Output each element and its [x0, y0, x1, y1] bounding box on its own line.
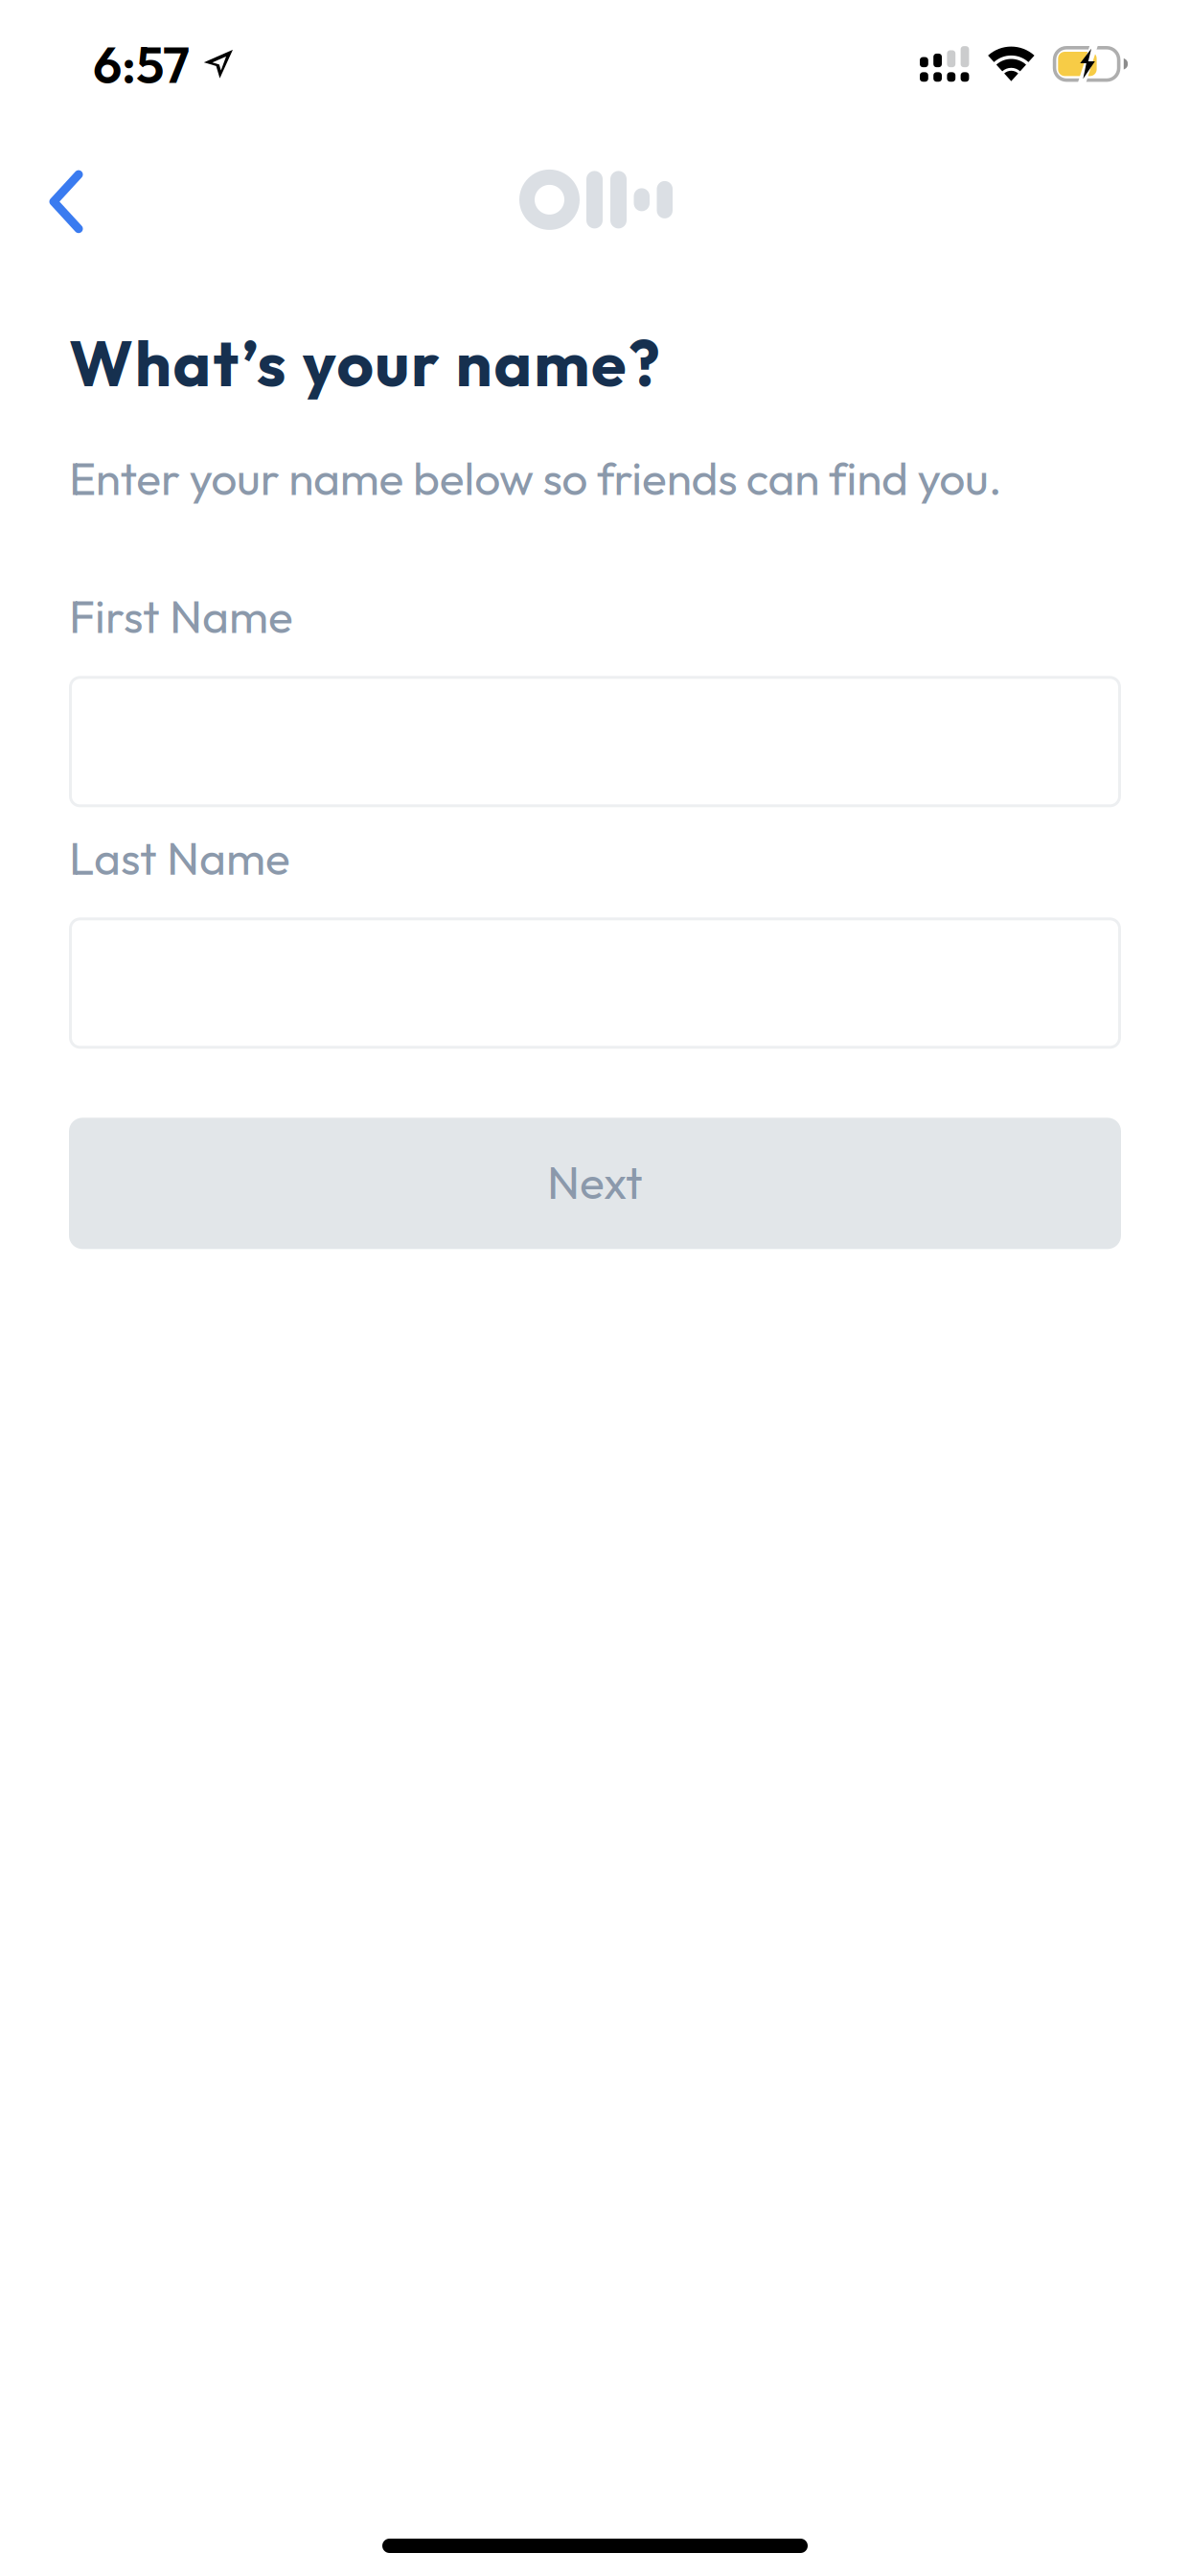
staticText: Next: [547, 1153, 643, 1211]
button[interactable]: Last Name: [69, 917, 1121, 1049]
staticText: 6:57: [93, 32, 190, 96]
button[interactable]: Back: [20, 156, 112, 248]
button[interactable]: Next: [69, 1118, 1121, 1249]
staticText: Last Name: [69, 829, 290, 887]
staticText: What’s your name?: [69, 322, 660, 403]
staticText: First Name: [69, 587, 293, 645]
button[interactable]: First Name: [69, 676, 1121, 807]
staticText: Enter your name below so friends can fin…: [69, 449, 1002, 507]
